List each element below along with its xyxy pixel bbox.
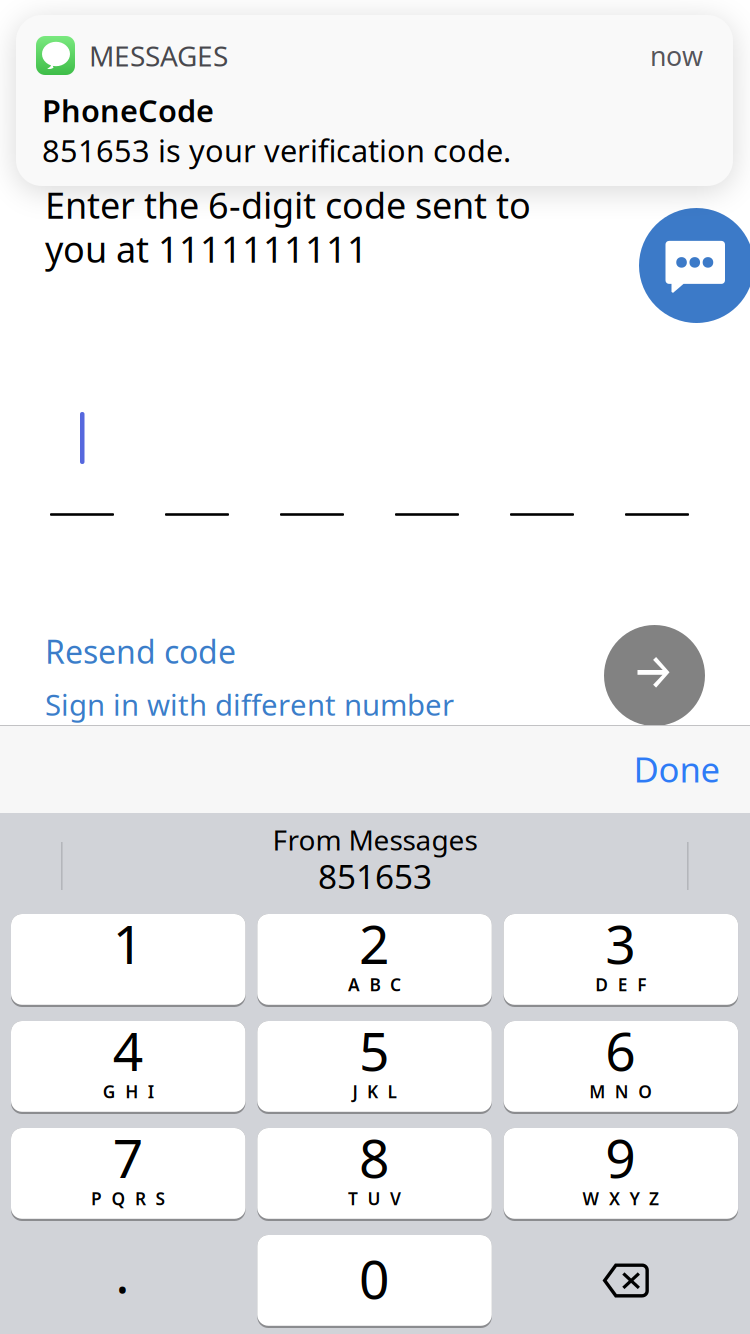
staticText: 2 [359, 908, 390, 979]
staticText: . [115, 1237, 129, 1308]
staticText: 3 [605, 908, 636, 979]
staticText: 9 [605, 1122, 636, 1193]
button[interactable]: 1 [11, 914, 245, 1007]
button[interactable]: 8 [257, 1128, 492, 1221]
button[interactable]: Delete [504, 1235, 738, 1328]
staticText: MNO [589, 1080, 652, 1103]
staticText: From Messages [272, 821, 477, 858]
button[interactable]: 9 [504, 1128, 738, 1221]
staticText: Enter the 6-digit code sent to [45, 181, 531, 229]
staticText: WXYZ [583, 1187, 659, 1210]
staticText: Resend code [45, 630, 236, 672]
staticText: Done [633, 746, 720, 792]
staticText: ABC [348, 973, 401, 996]
button[interactable]: 6 [504, 1021, 738, 1114]
staticText: now [650, 38, 703, 73]
staticText: DEF [595, 973, 646, 996]
button[interactable]: 7 [11, 1128, 245, 1221]
staticText: 4 [113, 1015, 144, 1086]
staticText: 0 [359, 1243, 390, 1314]
button[interactable]: Sign in with different number [45, 685, 454, 724]
button[interactable]: Done [617, 725, 737, 813]
button[interactable]: 0 [257, 1235, 492, 1328]
button[interactable]: Resend code [45, 630, 236, 672]
button[interactable]: Period [11, 1235, 245, 1328]
staticText: 6 [605, 1015, 636, 1086]
staticText: 5 [359, 1015, 390, 1086]
staticText: you at 1111111111 [45, 225, 368, 273]
staticText: 851653 [318, 854, 432, 898]
staticText: 851653 is your verification code. [42, 130, 511, 171]
staticText: Sign in with different number [45, 685, 454, 724]
staticText: 1 [113, 908, 144, 979]
button[interactable]: 2 [257, 914, 492, 1007]
button[interactable]: Continue [604, 625, 705, 726]
staticText: JKL [353, 1080, 397, 1103]
staticText: PhoneCode [42, 90, 214, 131]
button[interactable]: 5 [257, 1021, 492, 1114]
button[interactable]: 4 [11, 1021, 245, 1114]
staticText: MESSAGES [89, 37, 228, 74]
staticText: TUV [348, 1187, 401, 1210]
staticText: 8 [359, 1122, 390, 1193]
button[interactable]: 3 [504, 914, 738, 1007]
staticText: PQRS [91, 1187, 165, 1210]
staticText: GHI [103, 1080, 154, 1103]
staticText: 7 [113, 1122, 144, 1193]
